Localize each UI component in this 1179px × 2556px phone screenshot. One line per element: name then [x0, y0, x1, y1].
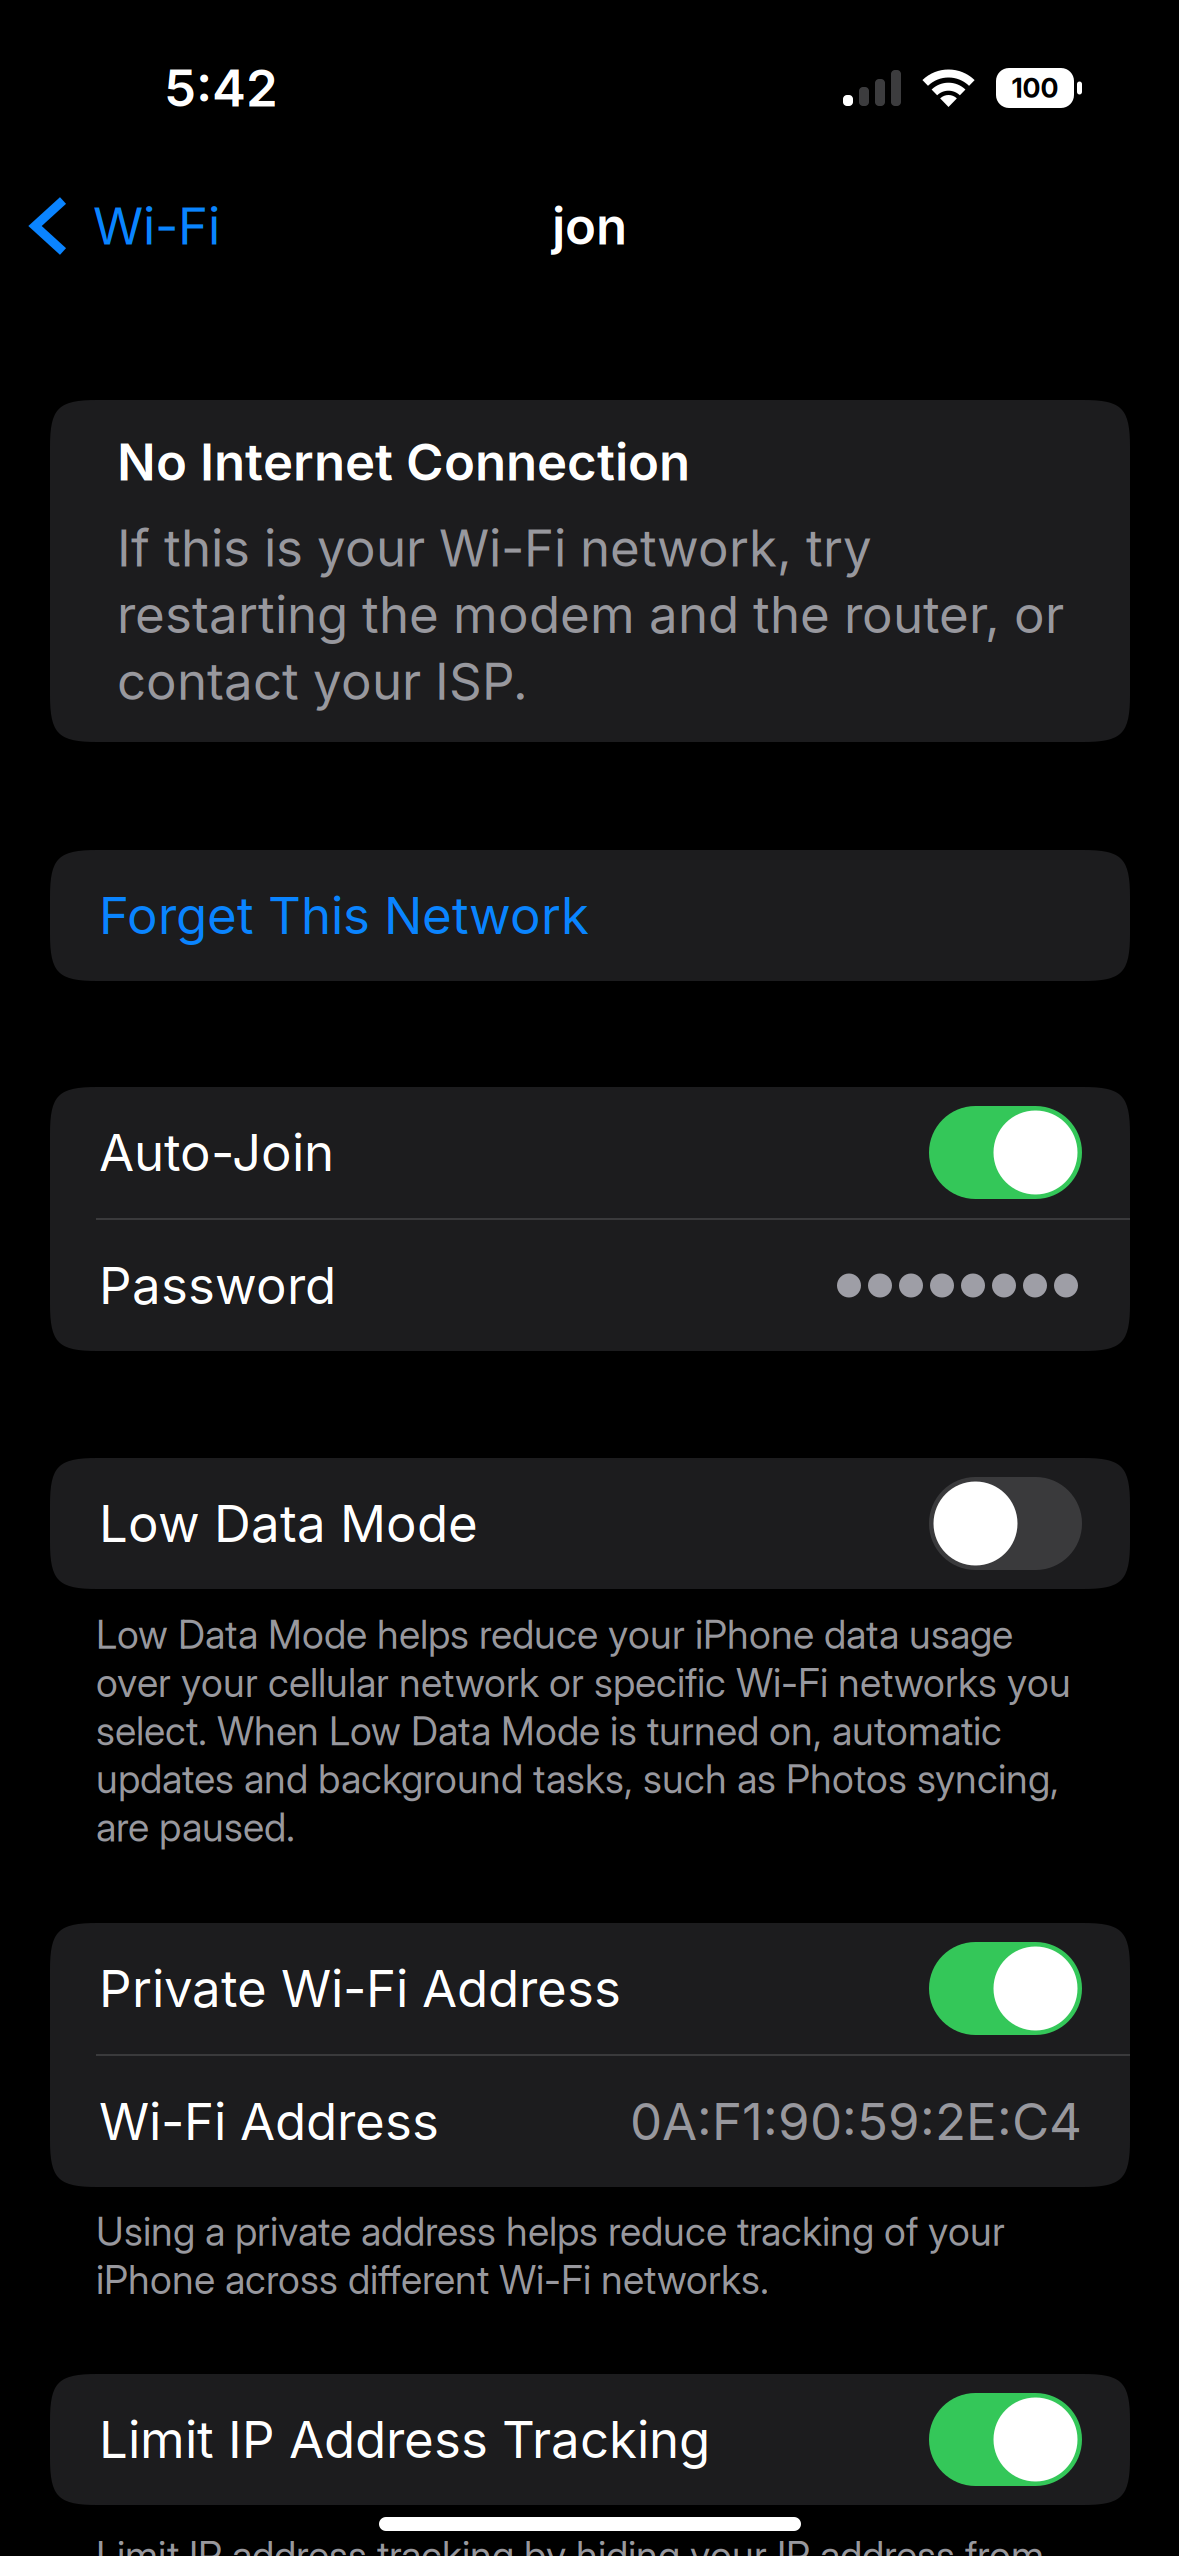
button[interactable]: Wi-Fi Address: [50, 2056, 1130, 2187]
staticText: Wi-Fi Address: [99, 2091, 439, 2152]
button[interactable]: Wi-Fi: [0, 160, 400, 292]
staticText: jon: [552, 195, 627, 257]
button[interactable]: Private Wi-Fi Address: [50, 1923, 1130, 2054]
button[interactable]: Forget This Network: [50, 850, 1130, 981]
button[interactable]: Limit IP Address Tracking: [50, 2374, 1130, 2505]
staticText: Forget This Network: [99, 885, 589, 946]
staticText: Private Wi-Fi Address: [99, 1958, 621, 2019]
staticText: Password: [99, 1255, 336, 1316]
staticText: Limit IP Address Tracking: [99, 2409, 710, 2470]
staticText: Low Data Mode helps reduce your iPhone d…: [96, 1611, 1071, 1851]
button[interactable]: Password: [50, 1220, 1130, 1351]
staticText: Wi-Fi: [93, 195, 220, 257]
staticText: 5:42: [164, 57, 278, 119]
staticText: 0A:F1:90:59:2E:C4: [630, 2091, 1082, 2152]
staticText: Auto-Join: [99, 1122, 334, 1183]
staticText: 100: [1011, 72, 1058, 104]
staticText: Using a private address helps reduce tra…: [96, 2208, 1005, 2303]
staticText: Low Data Mode: [99, 1493, 478, 1554]
button[interactable]: Auto-Join: [50, 1087, 1130, 1218]
staticText: If this is your Wi-Fi network, try resta…: [117, 517, 1064, 712]
staticText: Limit IP address tracking by hiding your…: [96, 2532, 1044, 2556]
staticText: No Internet Connection: [117, 431, 690, 493]
button[interactable]: Low Data Mode: [50, 1458, 1130, 1589]
